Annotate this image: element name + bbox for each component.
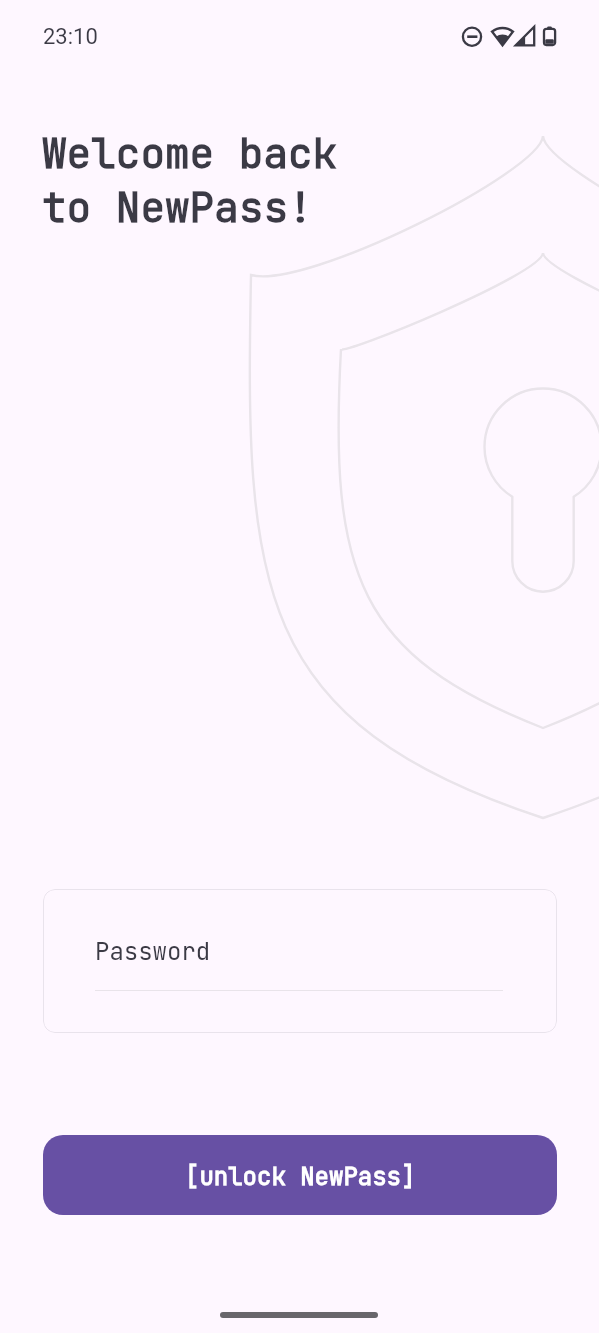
staticText: Welcome back — [42, 126, 338, 180]
staticText: Password — [95, 936, 211, 968]
staticText: [unlock NewPass] — [185, 1161, 416, 1193]
button[interactable]: Password — [43, 889, 557, 1033]
staticText: to NewPass! — [42, 180, 313, 234]
staticText: 23:10 — [43, 24, 98, 50]
other: Status icons — [458, 22, 562, 52]
button[interactable]: [unlock NewPass] — [43, 1135, 557, 1215]
